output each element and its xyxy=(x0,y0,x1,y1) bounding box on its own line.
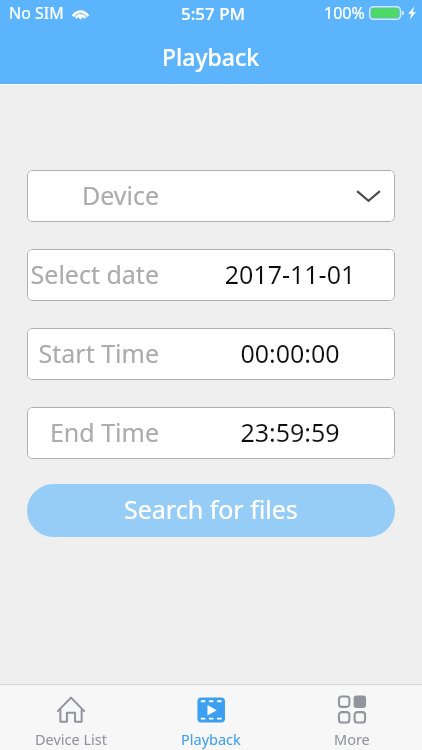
button[interactable]: Search for files xyxy=(27,484,395,537)
button[interactable]: Device List xyxy=(1,685,141,750)
staticText: Playback xyxy=(181,729,241,749)
button[interactable]: Device xyxy=(27,170,395,222)
other: Select device xyxy=(356,190,381,202)
staticText: Start Time xyxy=(27,336,159,370)
button[interactable]: More xyxy=(282,685,422,750)
button[interactable]: End Time xyxy=(27,407,395,459)
staticText: Device List xyxy=(35,729,108,749)
staticText: Select date xyxy=(27,257,159,291)
staticText: 5:57 PM xyxy=(181,2,246,25)
staticText: No SIM xyxy=(9,2,64,24)
staticText: More xyxy=(334,729,370,749)
staticText: 23:59:59 xyxy=(210,415,370,449)
button[interactable]: Select date xyxy=(27,249,395,301)
staticText: 00:00:00 xyxy=(210,336,370,370)
staticText: 2017-11-01 xyxy=(210,257,370,291)
button[interactable]: Playback xyxy=(141,685,281,750)
staticText: 100% xyxy=(324,2,365,24)
staticText: End Time xyxy=(27,415,159,449)
staticText: Playback xyxy=(162,41,260,72)
button[interactable]: Start Time xyxy=(27,328,395,380)
staticText: Search for files xyxy=(124,492,298,526)
staticText: Device xyxy=(27,178,159,212)
